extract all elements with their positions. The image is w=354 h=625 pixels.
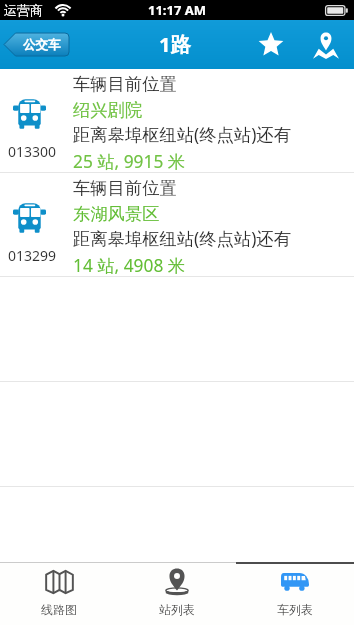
staticText: 11:17 AM xyxy=(148,1,207,19)
staticText: 线路图 xyxy=(41,602,77,617)
staticText: 25 站, 9915 米 xyxy=(73,150,186,174)
button[interactable]: 公交车 xyxy=(4,33,69,56)
button[interactable]: 013299 xyxy=(0,173,354,276)
button[interactable]: 站列表 xyxy=(118,562,236,625)
button[interactable]: Map xyxy=(311,30,341,60)
button[interactable]: Favorite xyxy=(256,30,286,60)
staticText: 绍兴剧院 xyxy=(73,99,143,121)
button[interactable]: 013300 xyxy=(0,69,354,172)
staticText: 14 站, 4908 米 xyxy=(73,254,186,278)
button[interactable]: 车列表 xyxy=(236,562,354,625)
staticText: 013300 xyxy=(8,142,57,161)
staticText: 站列表 xyxy=(159,602,195,617)
staticText: 车辆目前位置 xyxy=(73,73,177,95)
button[interactable]: 线路图 xyxy=(0,562,118,625)
staticText: 运营商 xyxy=(4,2,43,18)
staticText: 东湖风景区 xyxy=(73,203,160,225)
staticText: 距离皋埠枢纽站(终点站)还有 xyxy=(73,227,291,251)
staticText: 车辆目前位置 xyxy=(73,177,177,199)
staticText: 013299 xyxy=(8,246,57,265)
staticText: 公交车 xyxy=(23,37,61,53)
staticText: 距离皋埠枢纽站(终点站)还有 xyxy=(73,123,291,147)
staticText: 1路 xyxy=(159,31,191,58)
staticText: 车列表 xyxy=(277,602,313,617)
